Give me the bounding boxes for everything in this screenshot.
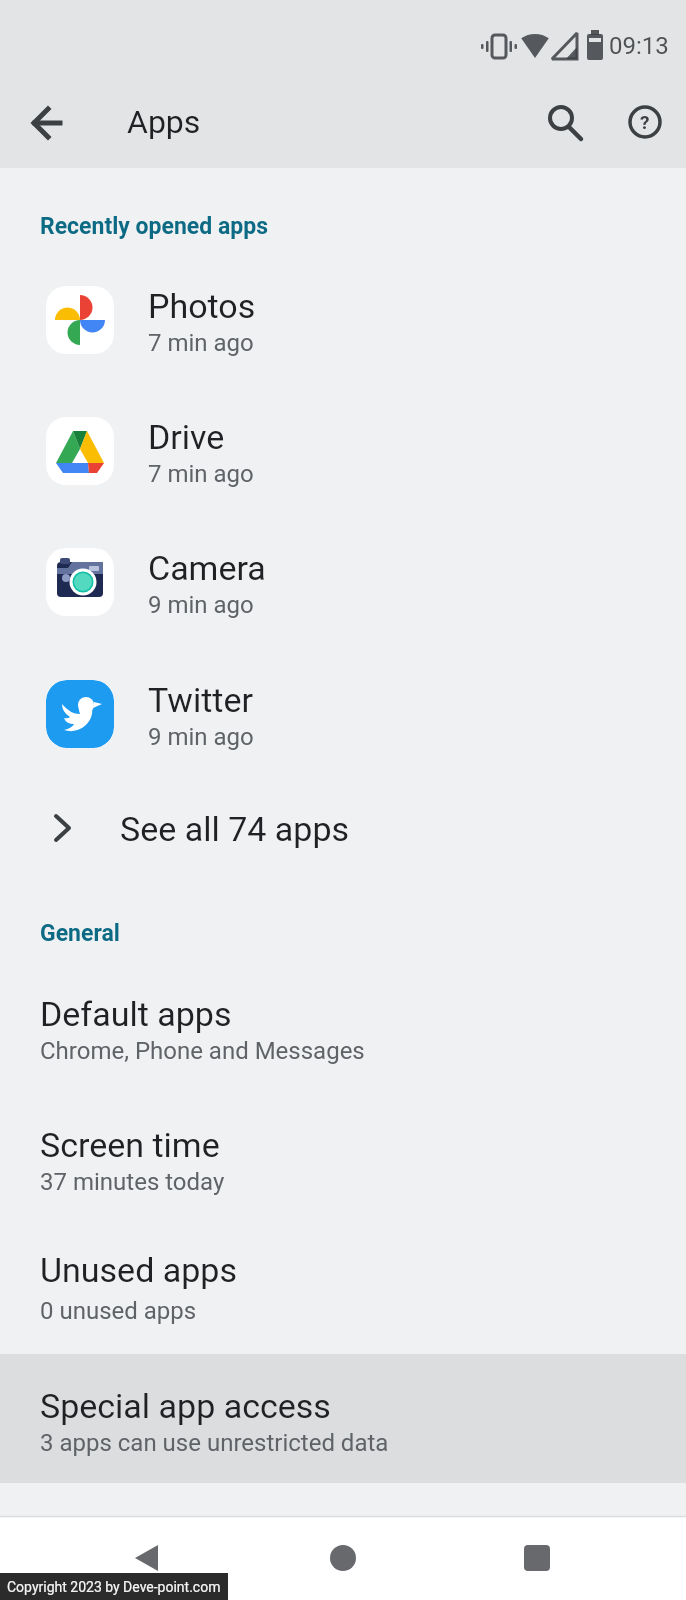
button[interactable]: [535, 95, 591, 151]
button[interactable]: [487, 1516, 587, 1600]
button[interactable]: Photos: [0, 254, 686, 385]
staticText: Unused apps: [40, 1250, 237, 1290]
staticText: General: [40, 920, 120, 947]
button[interactable]: Unused apps: [0, 1237, 686, 1354]
staticText: Default apps: [40, 994, 232, 1034]
staticText: See all 74 apps: [120, 809, 350, 849]
button[interactable]: Special app access: [0, 1354, 686, 1483]
button[interactable]: Camera: [0, 516, 686, 647]
button[interactable]: Drive: [0, 385, 686, 516]
staticText: 0 unused apps: [40, 1297, 197, 1325]
staticText: Photos: [148, 286, 256, 326]
button[interactable]: [96, 1516, 196, 1600]
staticText: Copyright 2023 by Deve-point.com: [7, 1579, 221, 1595]
staticText: Recently opened apps: [40, 213, 269, 240]
button[interactable]: [293, 1516, 393, 1600]
staticText: 37 minutes today: [40, 1168, 225, 1196]
staticText: Camera: [148, 548, 266, 588]
button[interactable]: Default apps: [0, 975, 686, 1106]
button[interactable]: [18, 95, 74, 151]
staticText: 7 min ago: [148, 460, 254, 488]
staticText: Drive: [148, 417, 225, 457]
button[interactable]: ?: [617, 95, 673, 151]
button[interactable]: See all 74 apps: [0, 779, 686, 877]
staticText: Special app access: [40, 1386, 331, 1426]
staticText: Twitter: [148, 680, 253, 720]
staticText: 09:13: [609, 32, 669, 60]
staticText: ?: [640, 111, 650, 133]
button[interactable]: Screen time: [0, 1106, 686, 1237]
staticText: 7 min ago: [148, 329, 254, 357]
staticText: Chrome, Phone and Messages: [40, 1037, 365, 1065]
staticText: 9 min ago: [148, 723, 254, 751]
staticText: Screen time: [40, 1125, 220, 1165]
staticText: 9 min ago: [148, 591, 254, 619]
button[interactable]: Twitter: [0, 648, 686, 779]
staticText: Apps: [127, 103, 201, 141]
staticText: 3 apps can use unrestricted data: [40, 1429, 389, 1457]
